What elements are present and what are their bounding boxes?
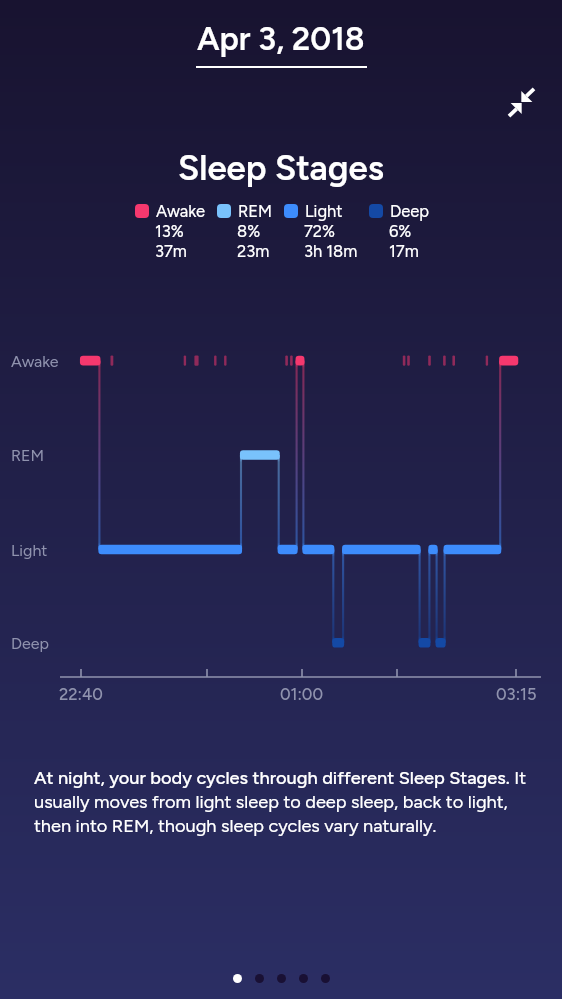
staticText: 17m: [389, 241, 419, 261]
staticText: Sleep Stages: [178, 147, 384, 189]
staticText: 22:40: [59, 684, 103, 704]
staticText: Awake: [156, 201, 205, 221]
staticText: 37m: [155, 241, 187, 261]
staticText: 01:00: [280, 684, 324, 704]
staticText: 13%: [155, 221, 184, 241]
staticText: Awake: [11, 352, 59, 371]
staticText: At night, your body cycles through diffe…: [34, 767, 534, 836]
staticText: REM: [238, 201, 273, 221]
staticText: 03:15: [496, 684, 537, 704]
staticText: 3h 18m: [304, 241, 358, 261]
button[interactable]: Collapse: [507, 88, 536, 117]
staticText: Light: [11, 541, 48, 560]
staticText: 8%: [237, 221, 261, 241]
staticText: Apr 3, 2018: [197, 19, 365, 58]
staticText: 72%: [304, 221, 336, 241]
staticText: REM: [11, 446, 45, 465]
staticText: 6%: [389, 221, 412, 241]
staticText: 23m: [237, 241, 270, 261]
staticText: Light: [305, 201, 343, 221]
staticText: Deep: [11, 634, 49, 653]
staticText: Deep: [390, 201, 430, 221]
